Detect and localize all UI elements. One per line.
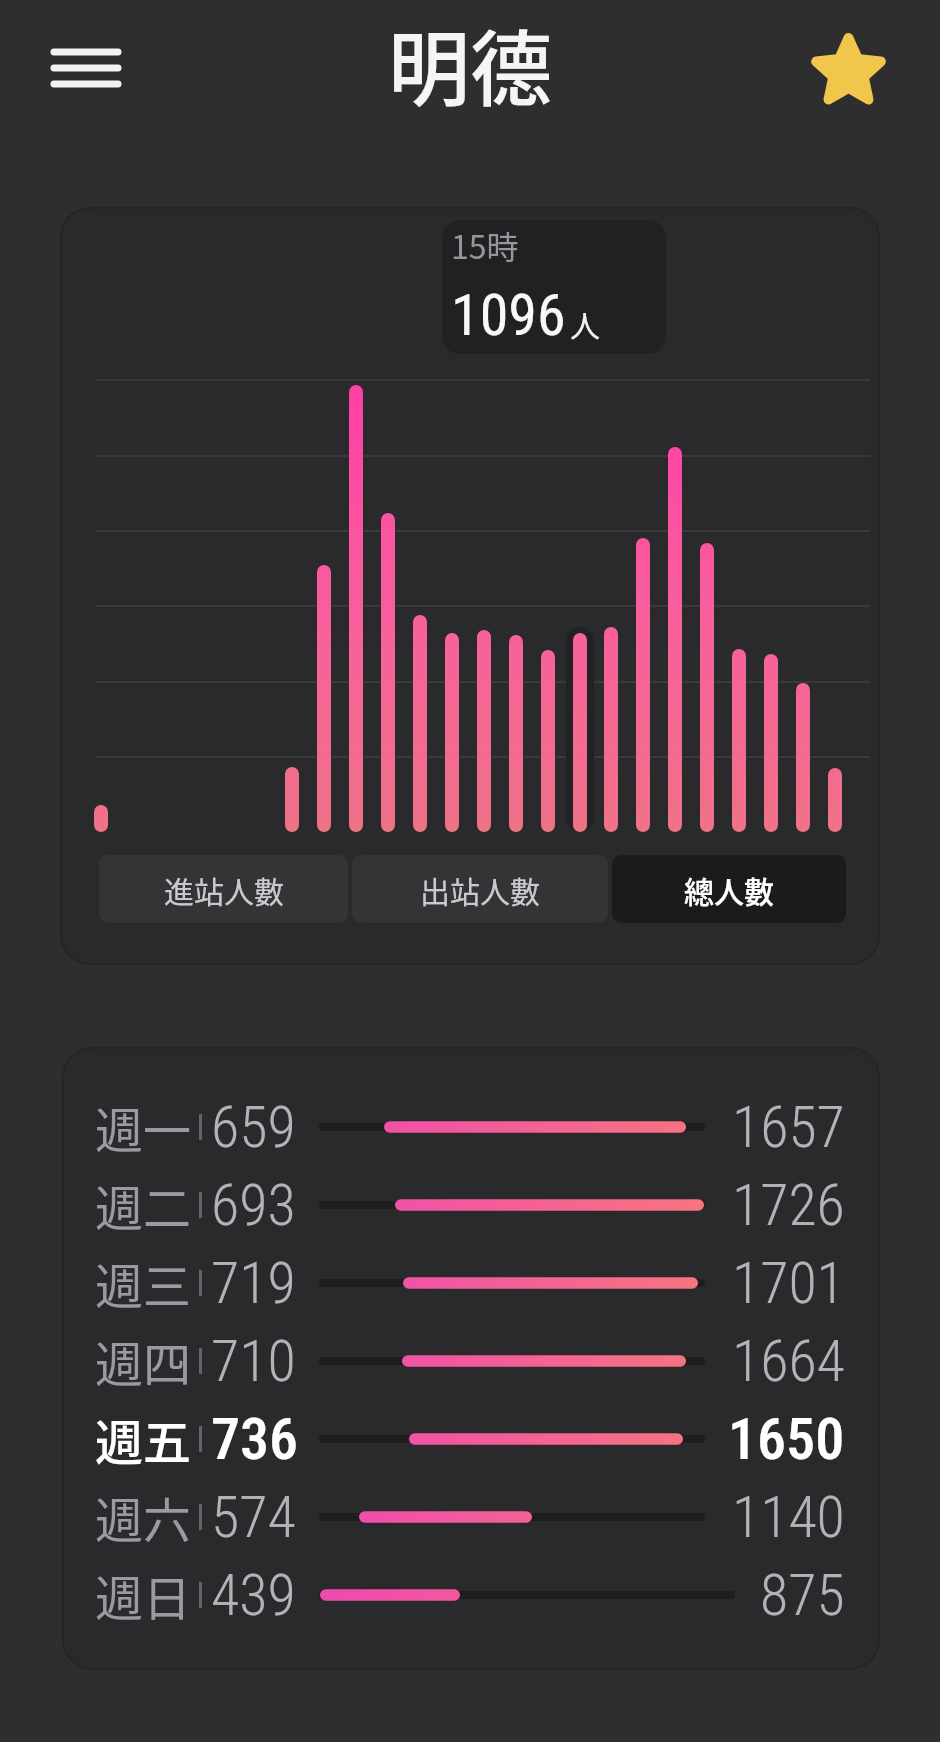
staticText: 1140	[732, 1483, 845, 1551]
button[interactable]: 進站人數	[99, 855, 348, 923]
button[interactable]: 週四	[62, 1322, 880, 1400]
staticText: 明德	[388, 4, 553, 123]
button[interactable]: 總人數	[612, 855, 846, 923]
button[interactable]: 週日	[62, 1556, 880, 1634]
staticText: 659	[211, 1093, 296, 1161]
staticText: 1650	[728, 1405, 845, 1473]
button[interactable]: 週五	[62, 1400, 880, 1478]
staticText: 693	[211, 1171, 296, 1239]
staticText: 719	[211, 1249, 296, 1317]
staticText: 875	[760, 1561, 845, 1629]
staticText: 15時	[451, 222, 519, 268]
staticText: 週四	[95, 1326, 192, 1396]
staticText: 週五	[95, 1404, 192, 1474]
staticText: 週日	[95, 1560, 192, 1630]
staticText: 週一	[95, 1092, 192, 1162]
staticText: 1096	[451, 281, 566, 349]
staticText: 1701	[732, 1249, 845, 1317]
button[interactable]	[800, 22, 898, 120]
staticText: 1664	[732, 1327, 845, 1395]
staticText: 人	[570, 302, 600, 345]
staticText: 736	[211, 1405, 299, 1473]
staticText: 週六	[95, 1482, 192, 1552]
staticText: 進站人數	[164, 868, 284, 911]
staticText: 總人數	[684, 868, 774, 911]
staticText: 710	[211, 1327, 296, 1395]
button[interactable]	[38, 30, 134, 106]
button[interactable]: 週一	[62, 1088, 880, 1166]
button[interactable]: 出站人數	[352, 855, 608, 923]
staticText: 439	[211, 1561, 296, 1629]
staticText: 1657	[732, 1093, 845, 1161]
staticText: 週三	[95, 1248, 192, 1318]
staticText: 1726	[732, 1171, 845, 1239]
staticText: 週二	[95, 1170, 192, 1240]
button[interactable]: 週六	[62, 1478, 880, 1556]
staticText: 574	[211, 1483, 296, 1551]
button[interactable]: 週三	[62, 1244, 880, 1322]
staticText: 出站人數	[420, 868, 540, 911]
button[interactable]: 週二	[62, 1166, 880, 1244]
